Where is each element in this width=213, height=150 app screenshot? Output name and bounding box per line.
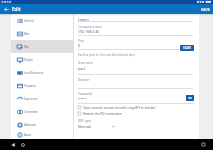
staticText: SCAN	[183, 46, 191, 50]
staticText: About	[24, 133, 32, 137]
staticText: Username	[78, 61, 94, 65]
staticText: Normal	[78, 124, 91, 129]
staticText: Set the port to 0 to use the default por…	[78, 53, 135, 57]
button[interactable]: Advanced	[11, 118, 73, 131]
staticText: Open console session (need to stop RFI o…	[83, 106, 156, 110]
staticText: Programs	[24, 84, 36, 88]
staticText: Password	[78, 92, 92, 96]
button[interactable]: Navigate back	[0, 4, 12, 14]
button[interactable]: General	[11, 14, 73, 27]
button[interactable]: SAVE	[201, 4, 210, 14]
staticText: Experience	[24, 97, 38, 101]
button[interactable]: Show password	[186, 95, 194, 101]
staticText: Wan	[24, 32, 30, 36]
button[interactable]: Recent apps	[199, 140, 208, 149]
button[interactable]: Restore the RD connection	[78, 111, 122, 116]
staticText: Computer name	[78, 25, 102, 29]
staticText: 0	[78, 43, 81, 48]
staticText: Rdp	[24, 45, 29, 49]
button[interactable]: Programs	[11, 79, 73, 92]
staticText: 192.168.0.40	[78, 29, 100, 34]
staticText: paul	[78, 66, 86, 71]
staticText: Edit	[12, 6, 21, 12]
staticText: Local Resources	[24, 71, 44, 75]
staticText: Advanced	[24, 123, 36, 127]
staticText: General	[24, 19, 34, 23]
staticText: RDP type	[78, 119, 92, 123]
button[interactable]: Back	[8, 140, 17, 149]
staticText: Connection	[24, 110, 38, 114]
button[interactable]: Connection	[11, 105, 73, 118]
button[interactable]: Display	[11, 53, 73, 66]
staticText: Logon	[78, 17, 89, 22]
staticText: Port	[78, 39, 85, 43]
button[interactable]: Rdp	[11, 40, 73, 53]
staticText: Domain	[78, 78, 90, 82]
staticText: ••••••	[78, 96, 87, 101]
button[interactable]: Local Resources	[11, 66, 73, 79]
staticText: SAVE	[201, 7, 210, 12]
button[interactable]: SCAN	[180, 45, 194, 51]
button[interactable]: Experience	[11, 92, 73, 105]
button[interactable]: About	[11, 131, 73, 139]
staticText: Restore the RD connection	[83, 112, 122, 116]
staticText: Display	[24, 58, 33, 62]
button[interactable]: Wan	[11, 27, 73, 40]
button[interactable]: Open console session (need to stop RFI o…	[78, 105, 156, 110]
button[interactable]: Normal	[78, 124, 115, 129]
button[interactable]: Home	[18, 140, 27, 149]
